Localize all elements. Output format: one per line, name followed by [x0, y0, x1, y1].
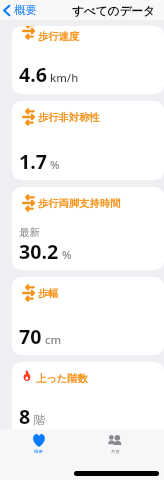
staticText: 上った階数	[36, 372, 88, 385]
staticText: 歩行両脚支持時間	[38, 197, 121, 210]
staticText: %	[62, 247, 72, 262]
button[interactable]: 歩行速度	[12, 26, 164, 94]
button[interactable]: 上った階数	[12, 362, 164, 440]
staticText: 歩行速度	[38, 30, 80, 43]
staticText: 歩幅	[38, 287, 59, 300]
staticText: 最新	[19, 226, 40, 239]
staticText: %	[50, 157, 60, 172]
button[interactable]: 共有	[77, 429, 154, 480]
button[interactable]: 歩行両脚支持時間	[12, 187, 164, 270]
button[interactable]: 概要	[0, 3, 42, 18]
button[interactable]: 概要	[0, 429, 77, 480]
staticText: 1.7	[19, 148, 47, 175]
staticText: 30.2	[19, 238, 59, 265]
staticText: すべてのデータ	[72, 4, 155, 19]
button[interactable]: 歩行非対称性	[12, 101, 164, 180]
staticText: 8	[19, 403, 31, 430]
staticText: 概要	[34, 449, 43, 455]
button[interactable]: 歩幅	[12, 277, 164, 355]
staticText: 4.6	[19, 61, 47, 88]
staticText: 共有	[111, 449, 120, 455]
staticText: 70	[19, 323, 42, 350]
staticText: 歩行非対称性	[38, 111, 100, 124]
staticText: km/h	[50, 70, 79, 85]
staticText: 概要	[14, 3, 38, 18]
staticText: 階	[34, 413, 46, 427]
staticText: cm	[45, 332, 62, 347]
